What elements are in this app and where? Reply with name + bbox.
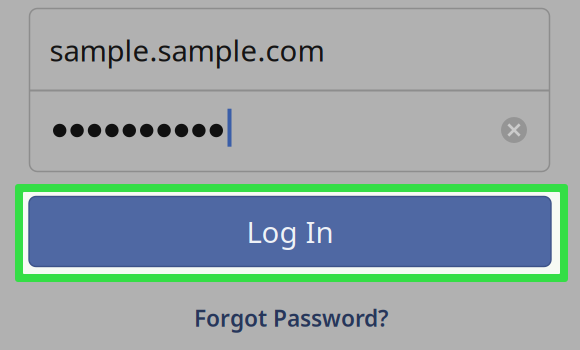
button[interactable]: sample.sample.com [29, 9, 549, 91]
button[interactable] [29, 90, 549, 170]
staticText: Forgot Password? [194, 303, 388, 333]
button[interactable]: Clear password [495, 111, 533, 149]
staticText: sample.sample.com [49, 30, 324, 69]
button[interactable]: Forgot Password? [186, 298, 396, 338]
button[interactable]: Log In [29, 196, 551, 266]
staticText: Log In [246, 212, 333, 251]
